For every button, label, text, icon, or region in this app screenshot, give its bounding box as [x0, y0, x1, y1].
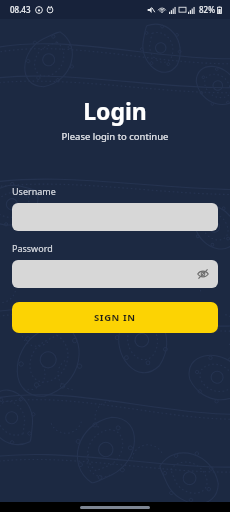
staticText: Please login to continue: [0, 130, 230, 143]
staticText: Username: [12, 185, 56, 197]
button[interactable]: Show password: [194, 265, 212, 283]
staticText: Password: [12, 242, 53, 254]
button[interactable]: Show password: [12, 260, 218, 288]
staticText: 82%: [199, 4, 215, 15]
staticText: SIGN IN: [94, 311, 136, 324]
staticText: Login: [0, 95, 230, 126]
staticText: 08.43: [10, 4, 31, 15]
button[interactable]: SIGN IN: [12, 302, 218, 333]
button[interactable]: [12, 203, 218, 231]
